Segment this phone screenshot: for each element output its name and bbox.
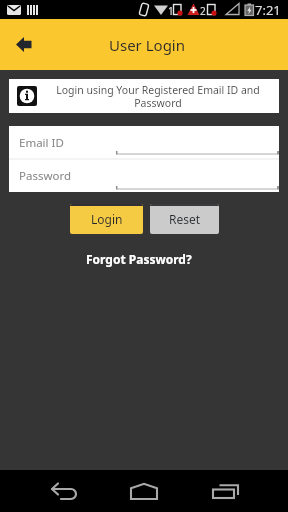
staticText: User Login <box>109 35 186 55</box>
staticText: Reset <box>169 211 201 227</box>
button[interactable] <box>42 470 86 512</box>
staticText: Password <box>19 168 72 184</box>
staticText: Email ID <box>19 135 64 151</box>
staticText: Login using Your Registered Email ID and… <box>56 83 260 110</box>
button[interactable]: Forgot Password? <box>86 251 192 267</box>
button[interactable]: Login <box>70 204 143 234</box>
staticText: 2 <box>200 4 206 18</box>
staticText: Login <box>91 211 123 227</box>
staticText: 7:21 <box>255 1 281 19</box>
button[interactable] <box>2 19 46 70</box>
button[interactable] <box>203 470 247 512</box>
button[interactable]: Reset <box>150 204 219 234</box>
button[interactable]: Email ID <box>9 126 279 159</box>
button[interactable]: Password <box>9 159 279 192</box>
staticText: 1 <box>168 4 174 18</box>
button[interactable] <box>122 470 166 512</box>
